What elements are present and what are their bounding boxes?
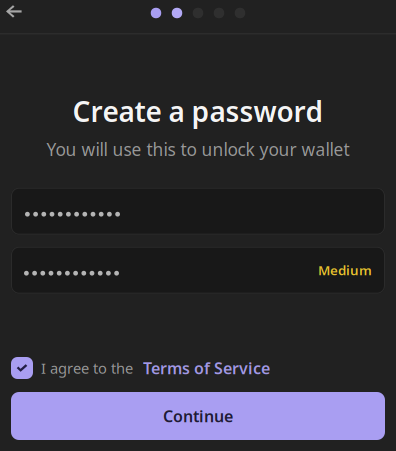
- staticText: Medium: [318, 261, 372, 279]
- button[interactable]: Back: [0, 0, 32, 33]
- button[interactable]: Continue: [11, 392, 385, 440]
- staticText: Continue: [163, 405, 233, 427]
- staticText: You will use this to unlock your wallet: [46, 138, 349, 161]
- staticText: I agree to the: [41, 358, 133, 378]
- button[interactable]: Confirm password, strength Medium: [11, 247, 385, 294]
- button[interactable]: Terms of Service: [133, 357, 270, 379]
- button[interactable]: I agree to the: [11, 357, 133, 379]
- button[interactable]: Password: [11, 188, 385, 235]
- staticText: Terms of Service: [143, 357, 270, 379]
- staticText: Create a password: [72, 92, 323, 130]
